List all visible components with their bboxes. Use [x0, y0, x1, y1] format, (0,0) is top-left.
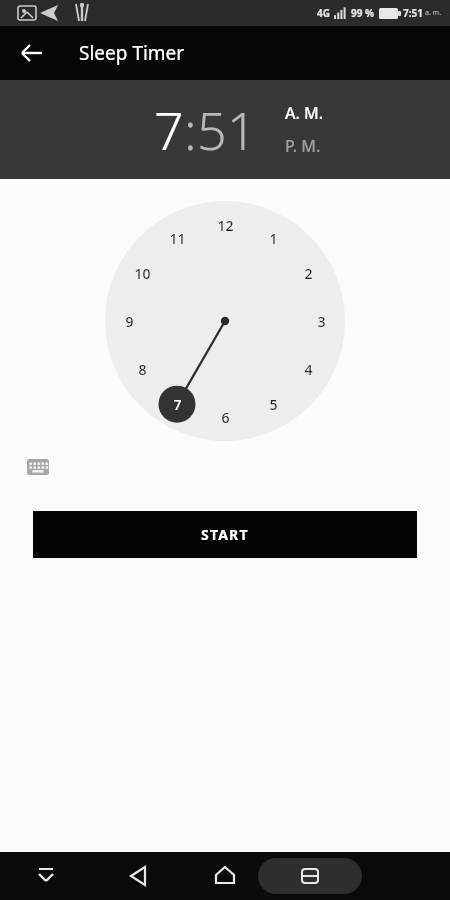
- staticText: 8: [138, 360, 147, 379]
- button[interactable]: 7: [154, 94, 184, 165]
- staticText: Sleep Timer: [79, 40, 185, 66]
- staticText: 7: [173, 395, 182, 414]
- button[interactable]: Back: [116, 853, 162, 899]
- staticText: 12: [217, 216, 234, 235]
- staticText: 99 %: [351, 6, 375, 20]
- staticText: A. M.: [285, 102, 324, 124]
- button[interactable]: 51: [197, 94, 257, 165]
- staticText: P. M.: [285, 135, 321, 157]
- staticText: 1: [269, 229, 278, 248]
- staticText: 5: [269, 395, 278, 414]
- button[interactable]: A. M.: [285, 102, 324, 124]
- staticText: 7:51: [403, 6, 423, 20]
- button[interactable]: Hide keyboard: [23, 853, 69, 899]
- staticText: 2: [304, 264, 313, 283]
- staticText: 4G: [317, 6, 330, 20]
- button[interactable]: Switch to text input: [22, 451, 54, 483]
- button[interactable]: START: [33, 511, 417, 558]
- button[interactable]: Back: [10, 31, 54, 75]
- staticText: START: [201, 525, 249, 544]
- button[interactable]: Home: [202, 853, 248, 899]
- staticText: 3: [317, 312, 326, 331]
- staticText: 10: [134, 264, 151, 283]
- staticText: 4: [304, 360, 313, 379]
- button[interactable]: Recent apps: [258, 858, 362, 894]
- staticText: 11: [169, 229, 186, 248]
- staticText: 6: [221, 408, 230, 427]
- staticText: :: [184, 94, 197, 165]
- staticText: a. m.: [425, 8, 442, 18]
- button[interactable]: Select hour: [105, 201, 345, 441]
- staticText: 9: [125, 312, 134, 331]
- button[interactable]: P. M.: [285, 135, 321, 157]
